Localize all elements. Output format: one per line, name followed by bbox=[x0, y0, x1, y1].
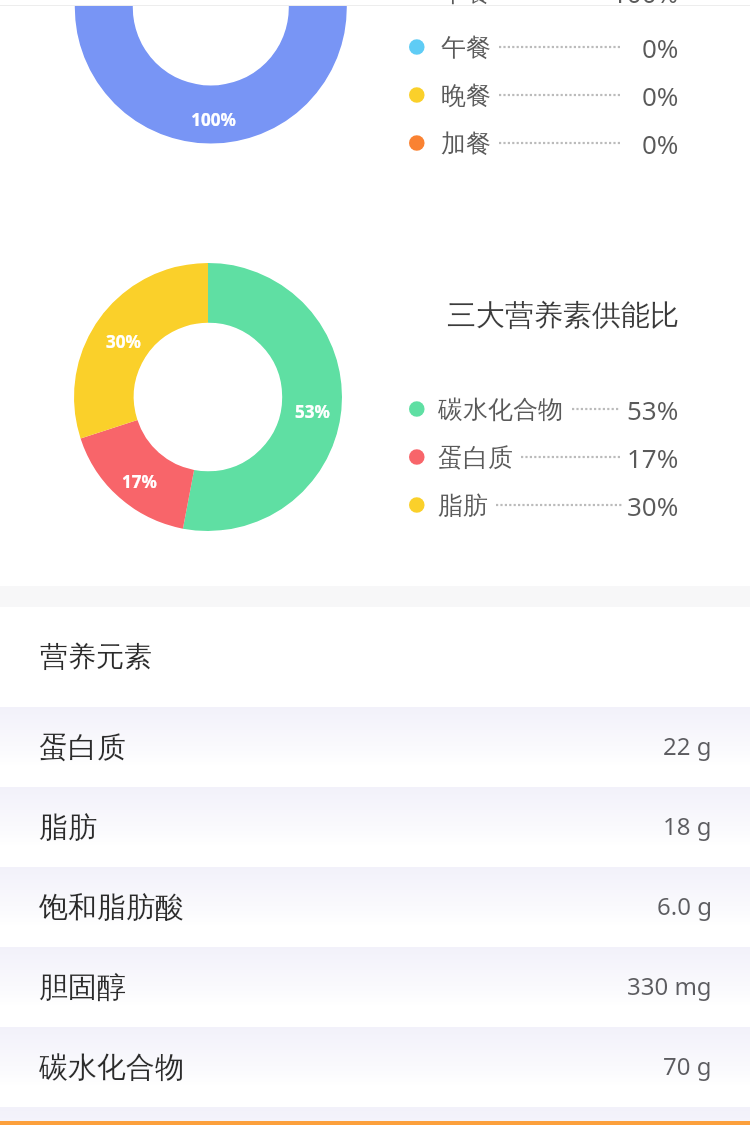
staticText: 18 g bbox=[663, 809, 712, 842]
button[interactable]: 胆固醇 bbox=[0, 947, 750, 1027]
staticText: 0% bbox=[642, 78, 679, 113]
staticText: 0% bbox=[642, 126, 679, 161]
staticText: 17% bbox=[122, 470, 157, 493]
button[interactable]: 午餐 bbox=[0, 23, 750, 71]
staticText: 营养元素 bbox=[40, 639, 152, 674]
staticText: 6.0 g bbox=[657, 889, 712, 922]
staticText: 17% bbox=[627, 440, 679, 475]
staticText: 三大营养素供能比 bbox=[447, 297, 679, 334]
staticText: 0% bbox=[642, 30, 679, 65]
button[interactable]: 钠 bbox=[0, 1107, 750, 1125]
button[interactable]: 碳水化合物 bbox=[0, 1027, 750, 1107]
button[interactable]: 蛋白质 bbox=[0, 433, 750, 481]
staticText: 蛋白质 bbox=[39, 729, 126, 766]
button[interactable]: 碳水化合物 bbox=[0, 385, 750, 433]
staticText: 午餐 bbox=[441, 32, 491, 63]
button[interactable]: 脂肪 bbox=[0, 481, 750, 529]
staticText: 蛋白质 bbox=[438, 442, 513, 473]
staticText: 加餐 bbox=[441, 128, 491, 159]
staticText: 脂肪 bbox=[39, 809, 97, 846]
staticText: 70 g bbox=[663, 1049, 712, 1082]
button[interactable]: 早餐 bbox=[0, 0, 750, 16]
staticText: 330 mg bbox=[627, 969, 712, 1002]
staticText: 53% bbox=[627, 392, 679, 427]
button[interactable]: 脂肪 bbox=[0, 787, 750, 867]
button[interactable]: 晚餐 bbox=[0, 71, 750, 119]
staticText: 早餐 bbox=[441, 0, 491, 8]
staticText: 100% bbox=[612, 0, 679, 10]
button[interactable]: 加餐 bbox=[0, 119, 750, 167]
button[interactable]: 饱和脂肪酸 bbox=[0, 867, 750, 947]
staticText: 胆固醇 bbox=[39, 969, 126, 1006]
staticText: 22 g bbox=[663, 729, 712, 762]
staticText: 晚餐 bbox=[441, 80, 491, 111]
button[interactable]: 蛋白质 bbox=[0, 707, 750, 787]
staticText: 30% bbox=[627, 488, 679, 523]
staticText: 碳水化合物 bbox=[39, 1049, 184, 1086]
staticText: 53% bbox=[295, 400, 330, 423]
staticText: 100% bbox=[191, 108, 236, 131]
staticText: 饱和脂肪酸 bbox=[39, 889, 184, 926]
staticText: 脂肪 bbox=[438, 490, 488, 521]
staticText: 30% bbox=[106, 330, 141, 353]
staticText: 碳水化合物 bbox=[438, 394, 563, 425]
